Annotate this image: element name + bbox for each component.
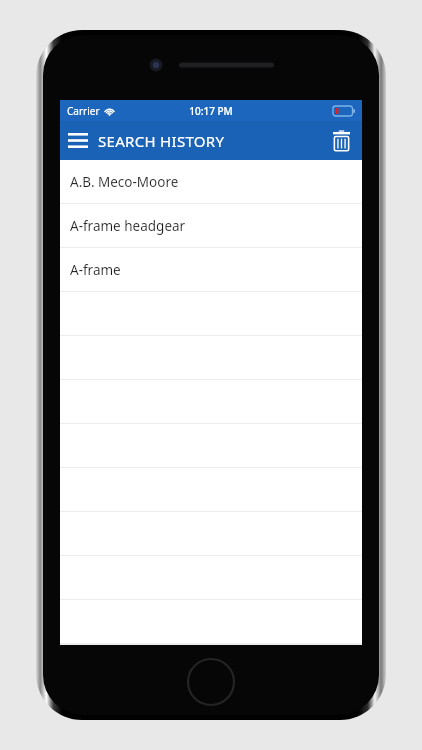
staticText: A.B. Meco-Moore	[70, 173, 179, 191]
button[interactable]: Clear history	[320, 121, 362, 160]
staticText: 10:17 PM	[189, 104, 233, 118]
staticText: A-frame	[70, 261, 121, 279]
staticText: A-frame headgear	[70, 217, 186, 235]
button[interactable]: A.B. Meco-Moore	[60, 160, 362, 204]
staticText: Carrier	[67, 104, 100, 118]
button[interactable]: Menu	[60, 121, 96, 160]
staticText: SEARCH HISTORY	[98, 131, 320, 151]
button[interactable]: A-frame headgear	[60, 204, 362, 248]
button[interactable]: A-frame	[60, 248, 362, 292]
